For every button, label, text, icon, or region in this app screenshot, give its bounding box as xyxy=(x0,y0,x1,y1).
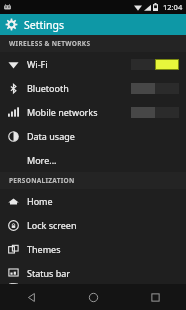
staticText: Data usage xyxy=(27,130,179,142)
staticText: More... xyxy=(27,154,179,166)
staticText: Settings xyxy=(24,18,64,32)
button[interactable]: Settings xyxy=(0,14,186,35)
staticText: Wi-Fi xyxy=(27,58,131,70)
staticText: Home xyxy=(27,195,179,207)
other: Settings xyxy=(5,18,18,31)
button[interactable]: Home xyxy=(0,189,186,213)
button[interactable]: Mobile networks xyxy=(0,100,186,124)
staticText: Themes xyxy=(27,243,179,255)
staticText: WIRELESS & NETWORKS xyxy=(9,39,91,48)
button[interactable]: Back xyxy=(0,284,62,310)
button[interactable]: Toggle off xyxy=(131,107,179,118)
button[interactable]: Toggle off xyxy=(131,83,179,94)
staticText: Status bar xyxy=(27,267,179,279)
button[interactable]: Recent apps xyxy=(124,284,186,310)
staticText: 12:04 xyxy=(163,2,183,12)
button[interactable]: Themes xyxy=(0,237,186,261)
staticText: Mobile networks xyxy=(27,106,131,118)
staticText: PERSONALIZATION xyxy=(9,176,75,185)
button[interactable]: Home xyxy=(62,284,124,310)
staticText: Lock screen xyxy=(27,219,179,231)
button[interactable]: Data usage xyxy=(0,124,186,148)
staticText: Bluetooth xyxy=(27,82,131,94)
button[interactable]: Status bar xyxy=(0,261,186,284)
button[interactable]: Wi-Fi xyxy=(0,52,186,76)
button[interactable]: Bluetooth xyxy=(0,76,186,100)
button[interactable]: Lock screen xyxy=(0,213,186,237)
button[interactable]: More... xyxy=(0,148,186,172)
button[interactable]: Toggle on xyxy=(131,59,179,70)
